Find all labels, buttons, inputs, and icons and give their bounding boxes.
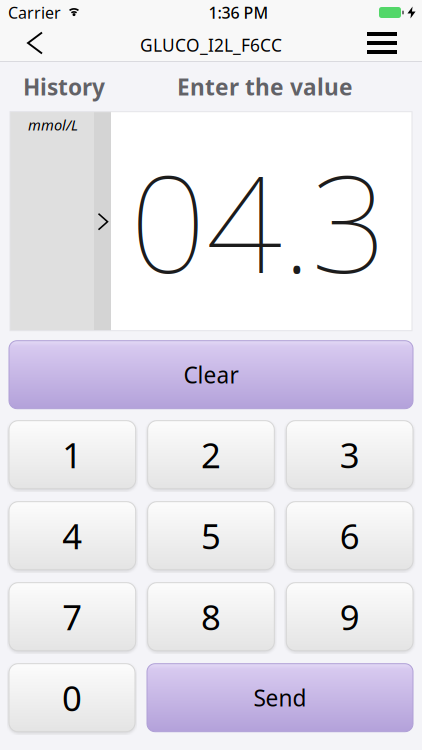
staticText: 0: [62, 675, 82, 721]
staticText: 4: [62, 513, 82, 559]
button[interactable]: 5: [148, 502, 274, 570]
staticText: Carrier: [8, 2, 61, 23]
staticText: 3: [340, 432, 360, 478]
button[interactable]: 8: [148, 583, 274, 651]
staticText: 9: [340, 594, 360, 640]
staticText: 1: [62, 432, 82, 478]
button[interactable]: 2: [148, 421, 274, 489]
staticText: GLUCO_I2L_F6CC: [140, 33, 282, 56]
staticText: 2: [201, 432, 221, 478]
button[interactable]: 0: [9, 664, 135, 732]
staticText: 6: [340, 513, 360, 559]
staticText: 8: [201, 594, 221, 640]
staticText: 5: [201, 513, 221, 559]
staticText: mmol/L: [28, 115, 78, 134]
button[interactable]: Send: [147, 664, 413, 732]
button[interactable]: History: [4, 62, 124, 112]
staticText: Send: [253, 683, 306, 713]
button[interactable]: Menu: [367, 25, 422, 61]
button[interactable]: 4: [9, 502, 136, 570]
button[interactable]: 6: [286, 502, 413, 570]
staticText: History: [23, 72, 105, 102]
button[interactable]: Back: [0, 25, 42, 60]
staticText: 1:36 PM: [208, 2, 268, 23]
button[interactable]: Clear: [9, 341, 413, 409]
button[interactable]: History panel: [10, 112, 111, 331]
staticText: 04.3: [130, 133, 387, 310]
staticText: Clear: [183, 360, 238, 390]
staticText: Enter the value: [177, 72, 353, 102]
button[interactable]: 1: [9, 421, 136, 489]
button[interactable]: 7: [9, 583, 136, 651]
staticText: 7: [62, 594, 82, 640]
button[interactable]: 9: [286, 583, 413, 651]
button[interactable]: 3: [286, 421, 413, 489]
